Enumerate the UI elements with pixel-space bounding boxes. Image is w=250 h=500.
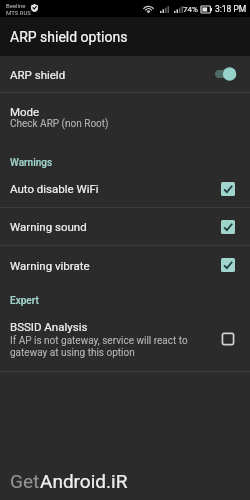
staticText: Mode	[10, 105, 40, 118]
staticText: 3:18 PM	[215, 4, 247, 14]
staticText: Warnings	[10, 157, 53, 169]
staticText: Android.iR	[40, 470, 128, 492]
staticText: Get	[10, 470, 40, 492]
staticText: ARP shield	[10, 68, 215, 81]
button[interactable]: Warning sound	[0, 208, 250, 245]
button[interactable]: Enabled checkbox	[220, 219, 236, 235]
staticText: MTS RUS	[6, 9, 31, 16]
staticText: 74%	[183, 5, 198, 14]
staticText: Beeline	[6, 2, 26, 9]
staticText: If AP is not gateway, service will react…	[10, 335, 198, 358]
button[interactable]: Auto disable WiFi	[0, 170, 250, 207]
button[interactable]: BSSID Analysis	[0, 310, 250, 371]
button[interactable]: Enabled checkbox	[220, 257, 236, 273]
button[interactable]: Disabled checkbox	[220, 331, 236, 347]
staticText: Expert	[10, 295, 39, 307]
staticText: ARP shield options	[10, 29, 128, 45]
button[interactable]: ARP shield options	[0, 17, 250, 56]
button[interactable]: ARP shield	[0, 56, 250, 92]
button[interactable]: Enabled checkbox	[220, 181, 236, 197]
staticText: Check ARP (non Root)	[10, 118, 109, 130]
staticText: Auto disable WiFi	[10, 182, 220, 195]
button[interactable]: Toggle ARP shield	[215, 66, 236, 82]
staticText: Warning vibrate	[10, 259, 220, 272]
button[interactable]: Warning vibrate	[0, 246, 250, 284]
staticText: BSSID Analysis	[10, 320, 88, 333]
staticText: Warning sound	[10, 220, 220, 233]
button[interactable]: Mode	[0, 93, 250, 145]
